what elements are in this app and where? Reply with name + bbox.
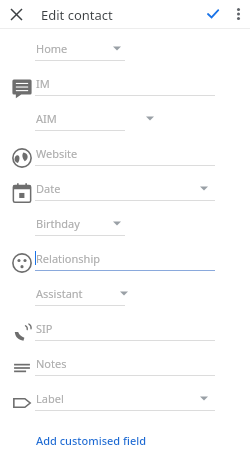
staticText: Website	[36, 146, 78, 161]
staticText: AIM	[36, 111, 57, 126]
button[interactable]: AIM	[0, 106, 250, 141]
button[interactable]: Notes	[0, 351, 250, 386]
button[interactable]: SIP	[0, 316, 250, 351]
staticText: Birthday	[36, 216, 80, 231]
button[interactable]: Website	[0, 141, 250, 176]
staticText: Date	[36, 181, 61, 196]
staticText: Relationship	[36, 251, 100, 266]
staticText: Assistant	[36, 286, 83, 301]
button[interactable]: Label	[0, 386, 250, 421]
button[interactable]: More options	[228, 4, 248, 24]
button[interactable]: Close	[6, 4, 26, 24]
button[interactable]: Save	[203, 4, 223, 24]
staticText: Edit contact	[41, 6, 113, 24]
staticText: IM	[36, 76, 50, 91]
button[interactable]: IM	[0, 71, 250, 106]
staticText: SIP	[36, 321, 53, 336]
staticText: Add customised field	[36, 433, 146, 446]
staticText: Notes	[36, 356, 67, 371]
button[interactable]: Add customised field	[28, 429, 154, 450]
button[interactable]: Home	[0, 36, 250, 71]
button[interactable]: Relationship	[0, 246, 250, 281]
staticText: Home	[36, 41, 68, 56]
staticText: Label	[36, 391, 64, 406]
button[interactable]: Assistant	[0, 281, 250, 316]
button[interactable]: Birthday	[0, 211, 250, 246]
button[interactable]: Date	[0, 176, 250, 211]
